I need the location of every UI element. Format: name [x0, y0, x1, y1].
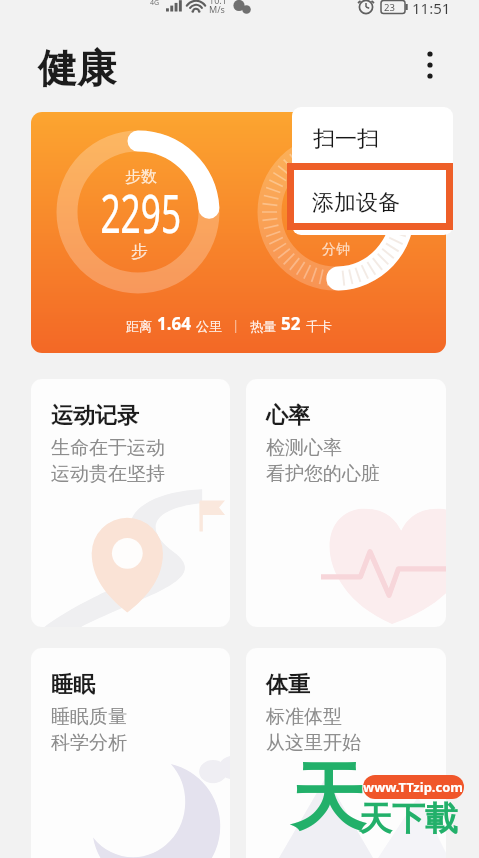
button[interactable]: 体重 — [246, 648, 446, 858]
staticText: 检测心率 — [266, 436, 342, 460]
staticText: 体重 — [266, 671, 310, 699]
staticText: 从这里开始 — [266, 731, 361, 755]
staticText: www.TTzip.com — [363, 778, 464, 796]
staticText: 看护您的心脏 — [266, 462, 380, 486]
staticText: 睡眠 — [51, 671, 95, 699]
staticText: 1.64 — [157, 312, 191, 335]
button[interactable]: More options — [410, 39, 450, 79]
staticText: 生命在于运动 — [51, 436, 165, 460]
staticText: 运动贵在坚持 — [51, 462, 165, 486]
staticText: 添加设备 — [312, 189, 400, 217]
staticText: 天 — [291, 752, 365, 845]
staticText: 52 — [281, 312, 301, 335]
staticText: 千卡 — [306, 318, 332, 334]
staticText: 步 — [131, 241, 148, 262]
staticText: 健康 — [38, 44, 116, 93]
staticText: 睡眠质量 — [51, 705, 127, 729]
staticText: 步数 — [125, 167, 157, 187]
button[interactable]: 运动记录 — [31, 379, 230, 627]
button[interactable]: 心率 — [246, 379, 446, 627]
staticText: 标准体型 — [266, 705, 342, 729]
button[interactable]: 睡眠 — [31, 648, 230, 858]
staticText: 热量 — [250, 318, 276, 334]
staticText: 天下載 — [359, 798, 458, 840]
staticText: 运动记录 — [51, 402, 139, 430]
button[interactable]: 步数 — [31, 112, 446, 353]
staticText: 距离 — [126, 318, 152, 334]
staticText: 4G — [150, 0, 160, 8]
staticText: 科学分析 — [51, 731, 127, 755]
staticText: 心率 — [266, 402, 310, 430]
staticText: 扫一扫 — [313, 125, 379, 153]
staticText: 公里 — [196, 318, 222, 334]
staticText: 11:51 — [412, 0, 451, 18]
staticText: 10.1 — [209, 0, 227, 6]
staticText: 23 — [384, 1, 395, 14]
staticText: 2295 — [100, 176, 181, 234]
button[interactable]: 添加设备 — [294, 170, 446, 223]
staticText: | — [232, 316, 240, 334]
button[interactable]: 扫一扫 — [292, 107, 453, 164]
staticText: M/s — [209, 3, 225, 15]
staticText: 分钟 — [322, 241, 350, 259]
